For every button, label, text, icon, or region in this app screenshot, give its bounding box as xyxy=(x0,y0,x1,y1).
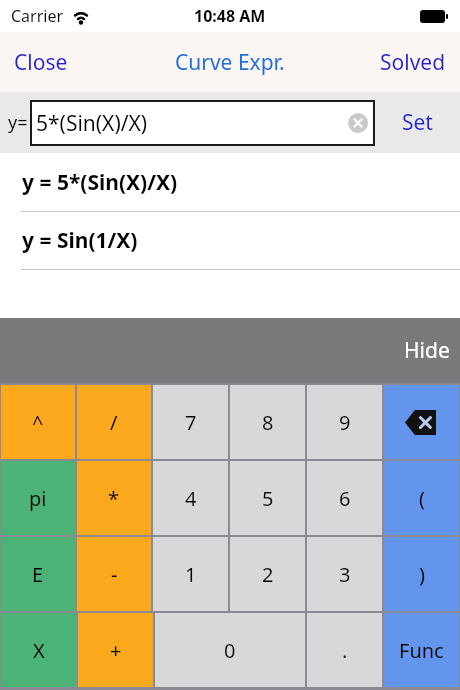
staticText: 7 xyxy=(185,409,197,436)
staticText: - xyxy=(111,561,118,588)
staticText: Curve Expr. xyxy=(175,48,285,77)
staticText: Set xyxy=(402,108,433,137)
button[interactable]: Close xyxy=(0,42,78,83)
button[interactable]: E xyxy=(1,537,75,611)
button[interactable]: 5 xyxy=(230,461,305,535)
staticText: X xyxy=(33,637,45,664)
staticText: pi xyxy=(29,485,47,512)
button[interactable]: 1 xyxy=(153,537,228,611)
staticText: 10:48 AM xyxy=(194,5,266,27)
button[interactable] xyxy=(348,113,368,133)
staticText: 1 xyxy=(185,561,197,588)
staticText: 9 xyxy=(339,409,351,436)
button[interactable]: 3 xyxy=(307,537,382,611)
button[interactable]: Solved xyxy=(370,42,460,83)
button[interactable]: y = Sin(1/X) xyxy=(0,212,460,269)
staticText: / xyxy=(110,409,118,436)
staticText: . xyxy=(342,637,348,664)
button[interactable]: ^ xyxy=(1,385,75,459)
staticText: 4 xyxy=(185,485,197,512)
staticText: y = 5*(Sin(X)/X) xyxy=(22,168,178,197)
button[interactable]: y = 5*(Sin(X)/X) xyxy=(0,153,460,211)
staticText: 5*(Sin(X)/X) xyxy=(36,109,148,138)
button[interactable]: ) xyxy=(384,537,459,611)
button[interactable]: 0 xyxy=(155,613,305,687)
staticText: Solved xyxy=(380,48,446,77)
staticText: 2 xyxy=(262,561,274,588)
button[interactable]: / xyxy=(77,385,151,459)
button[interactable]: 2 xyxy=(230,537,305,611)
staticText: ^ xyxy=(32,409,44,436)
button[interactable] xyxy=(384,385,459,459)
staticText: Carrier xyxy=(11,5,64,27)
staticText: 6 xyxy=(339,485,351,512)
staticText: 8 xyxy=(262,409,274,436)
button[interactable]: 6 xyxy=(307,461,382,535)
button[interactable]: ( xyxy=(384,461,459,535)
staticText: Func xyxy=(399,637,444,664)
staticText: 3 xyxy=(339,561,351,588)
staticText: Hide xyxy=(404,336,450,365)
staticText: ) xyxy=(419,561,425,588)
button[interactable]: Set xyxy=(375,92,460,153)
button[interactable]: 8 xyxy=(230,385,305,459)
button[interactable]: * xyxy=(77,461,151,535)
button[interactable]: Func xyxy=(384,613,459,687)
button[interactable]: + xyxy=(78,613,153,687)
staticText: * xyxy=(108,485,120,512)
button[interactable]: 4 xyxy=(153,461,228,535)
staticText: + xyxy=(110,637,122,664)
button[interactable]: . xyxy=(307,613,382,687)
staticText: 5 xyxy=(262,485,274,512)
button[interactable]: 7 xyxy=(153,385,228,459)
button[interactable]: - xyxy=(77,537,151,611)
button[interactable]: 9 xyxy=(307,385,382,459)
staticText: 0 xyxy=(224,637,236,664)
button[interactable]: Hide xyxy=(404,336,460,365)
staticText: E xyxy=(32,561,44,588)
button[interactable]: X xyxy=(1,613,76,687)
button[interactable]: pi xyxy=(1,461,75,535)
staticText: ( xyxy=(419,485,425,512)
staticText: y = Sin(1/X) xyxy=(22,226,138,255)
staticText: Close xyxy=(14,48,68,77)
staticText: y= xyxy=(8,110,28,135)
